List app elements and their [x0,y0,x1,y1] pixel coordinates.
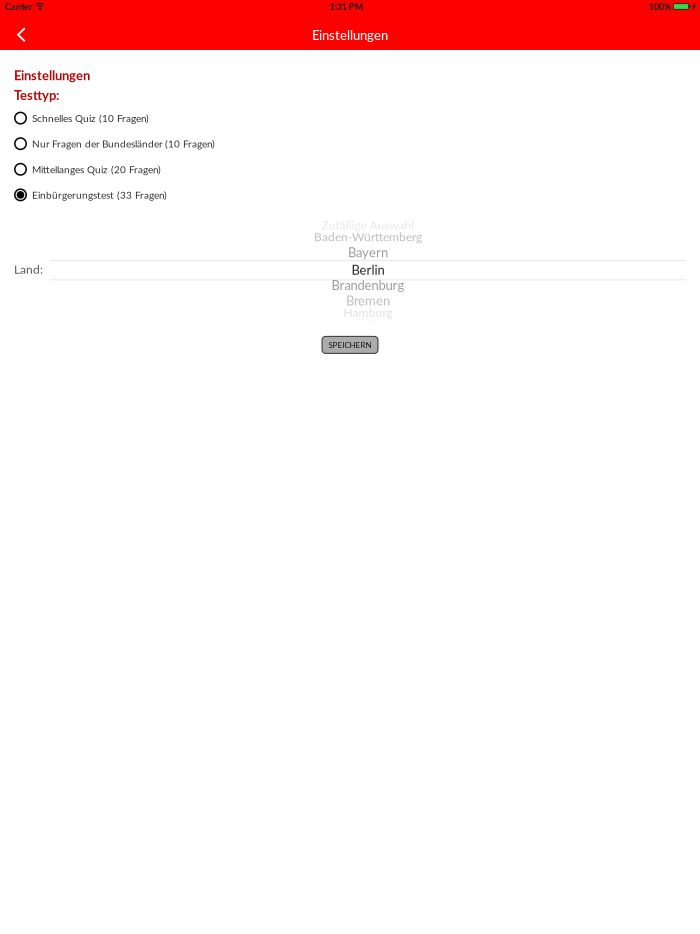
staticText: Zufällige Auswahl [321,218,414,232]
staticText: Hessen [356,314,380,324]
button[interactable]: Mittellanges Quiz (20 Fragen) [14,156,686,182]
staticText: Nur Fragen der Bundesländer (10 Fragen) [32,138,215,150]
button[interactable]: Einbürgerungstest (33 Fragen) [14,182,686,208]
staticText: 100% [649,1,671,12]
staticText: Mittellanges Quiz (20 Fragen) [32,163,161,175]
staticText: Schnelles Quiz (10 Fragen) [32,112,149,124]
staticText: Einstellungen [14,67,90,83]
staticText: Bremen [346,293,390,308]
staticText: Baden-Württemberg [314,229,422,244]
staticText: Einbürgerungstest (33 Fragen) [32,189,167,201]
button[interactable]: Nur Fragen der Bundesländer (10 Fragen) [14,131,686,156]
staticText: Testtyp: [14,87,59,103]
staticText: 1:31 PM [330,1,364,12]
staticText: Berlin [351,262,384,277]
staticText: Bayern [348,244,388,260]
button[interactable]: SPEICHERN [322,336,378,353]
staticText: Land: [14,262,43,276]
staticText: SPEICHERN [328,340,371,350]
button[interactable]: Back [4,20,38,50]
staticText: Brandenburg [331,277,404,293]
staticText: Carrier [5,1,32,12]
staticText: Einstellungen [312,27,388,43]
button[interactable]: Schnelles Quiz (10 Fragen) [14,105,686,131]
staticText: Hamburg [343,305,392,320]
